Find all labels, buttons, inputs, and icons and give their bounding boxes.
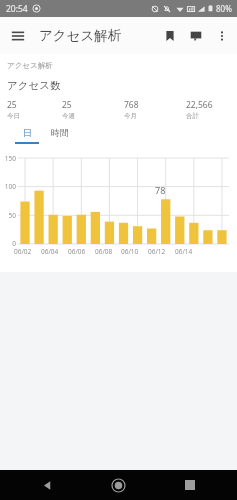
staticText: 06/08 xyxy=(95,247,113,256)
button[interactable]: Menu xyxy=(4,22,32,50)
button[interactable]: Comments xyxy=(183,23,209,49)
staticText: 25 xyxy=(7,99,17,111)
staticText: 今週 xyxy=(62,112,75,120)
staticText: 150 xyxy=(4,154,16,163)
staticText: 22,566 xyxy=(186,99,213,111)
button[interactable]: More options xyxy=(209,23,235,49)
staticText: アクセス解析 xyxy=(39,27,122,44)
staticText: アクセス数 xyxy=(7,79,61,92)
staticText: 06/10 xyxy=(121,247,139,256)
staticText: 06/14 xyxy=(175,247,193,256)
button[interactable]: Back xyxy=(42,480,53,491)
staticText: 06/06 xyxy=(68,247,86,256)
staticText: 日 xyxy=(23,127,32,138)
staticText: 80% xyxy=(216,3,232,14)
staticText: 06/04 xyxy=(41,247,59,256)
staticText: 0 xyxy=(12,239,16,248)
staticText: 78 xyxy=(155,184,166,196)
button[interactable]: 時間 xyxy=(42,127,78,144)
staticText: 25 xyxy=(62,99,72,111)
button[interactable]: 日 xyxy=(12,127,42,144)
staticText: 06/12 xyxy=(148,247,166,256)
staticText: 06/02 xyxy=(14,247,32,256)
staticText: 768 xyxy=(124,99,139,111)
staticText: 20:54 xyxy=(6,3,28,15)
staticText: 今月 xyxy=(124,112,137,120)
staticText: 合計 xyxy=(186,112,199,120)
button[interactable]: Home xyxy=(112,479,125,492)
button[interactable]: Bookmark xyxy=(157,23,183,49)
staticText: 時間 xyxy=(51,127,69,138)
staticText: 100 xyxy=(4,182,16,191)
staticText: 今日 xyxy=(7,112,20,120)
staticText: アクセス解析 xyxy=(7,61,53,70)
staticText: 50 xyxy=(8,211,16,220)
